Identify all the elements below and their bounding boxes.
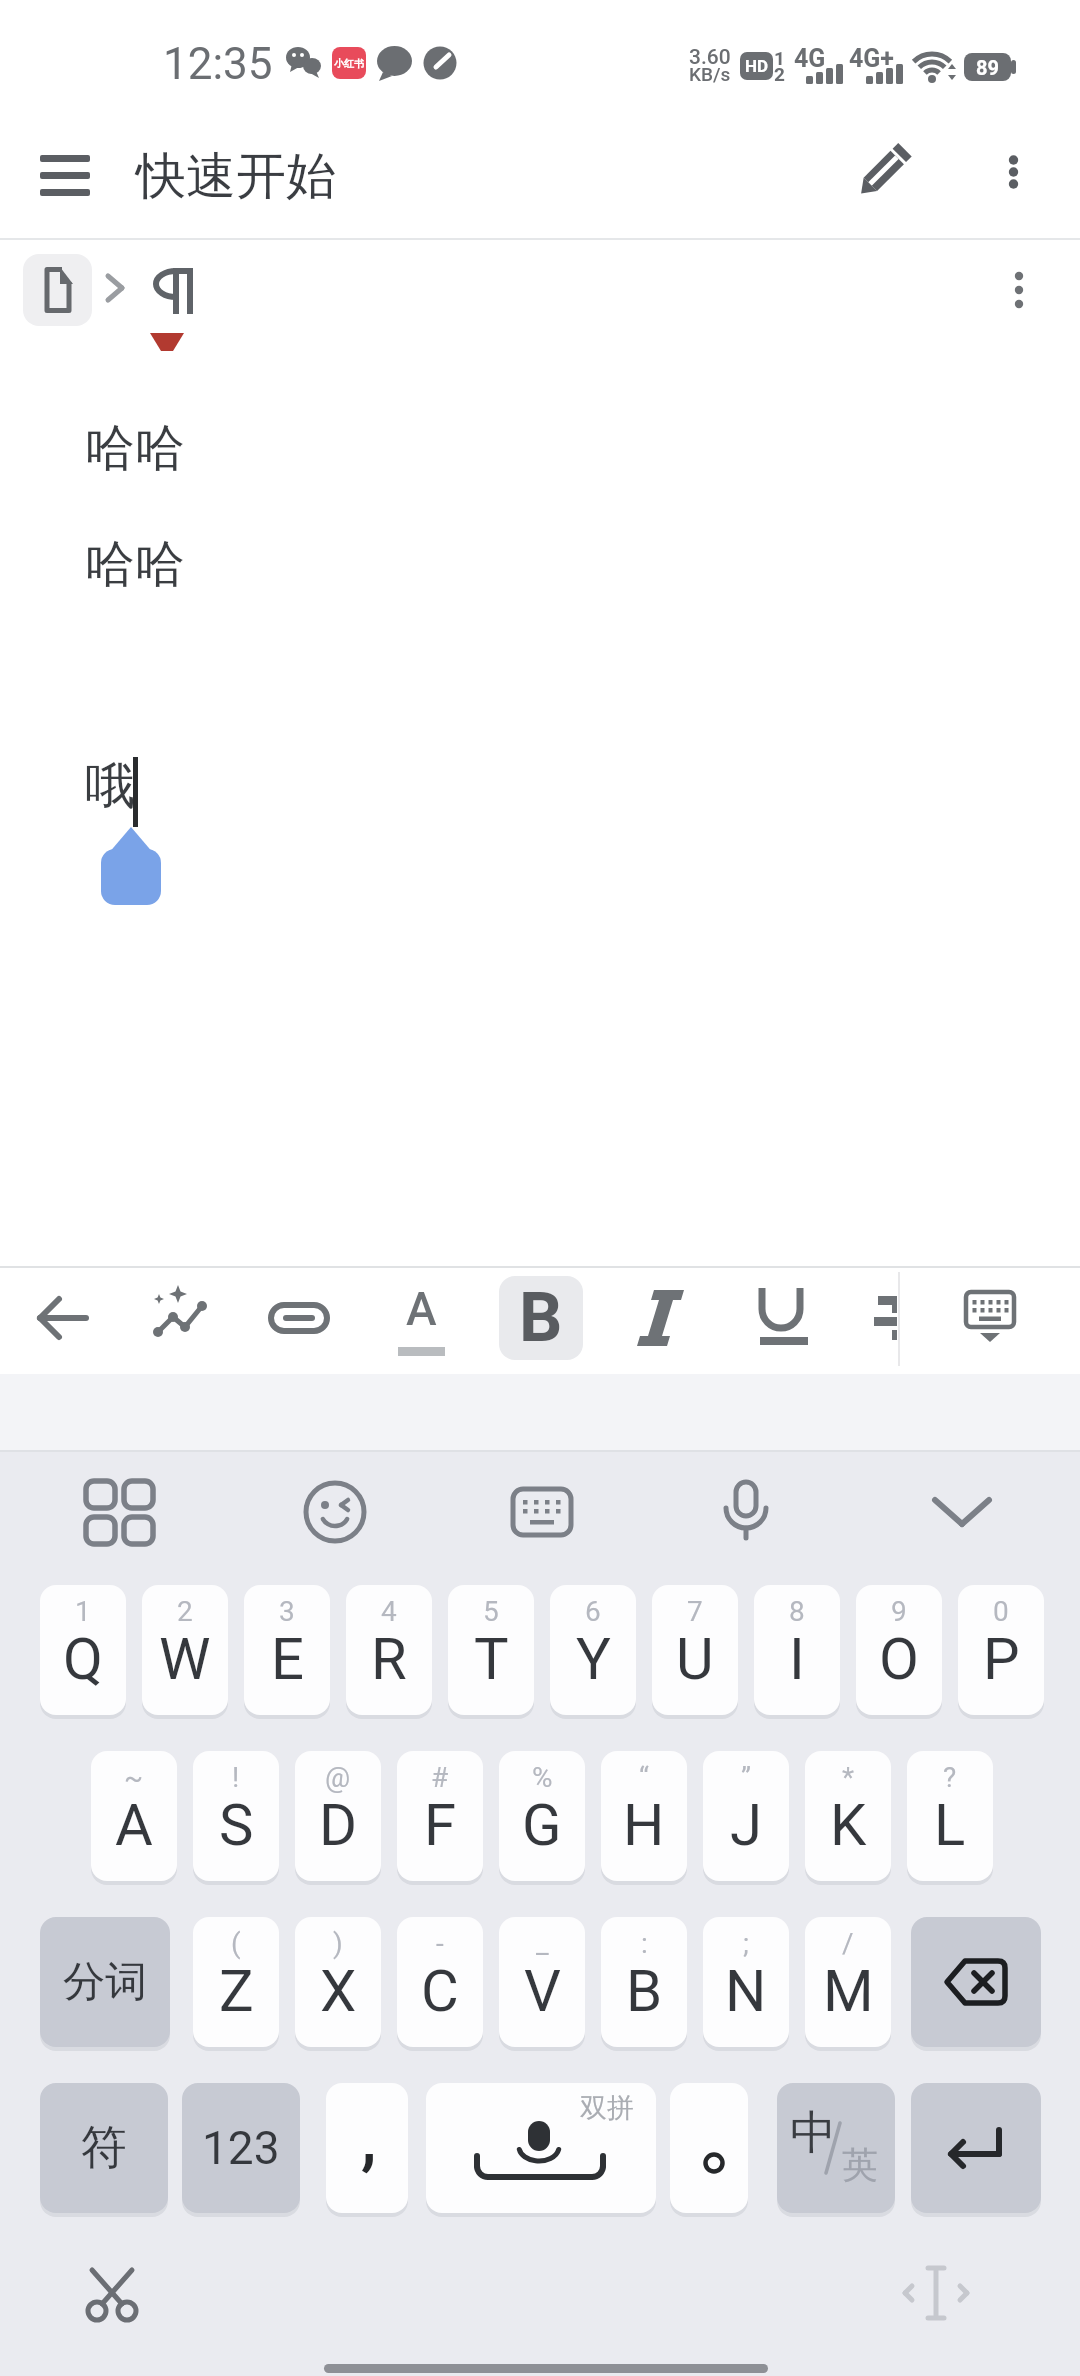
button[interactable]: _ bbox=[499, 1917, 585, 2047]
staticText: 3 bbox=[279, 1595, 295, 1628]
staticText: 3.60 bbox=[689, 45, 731, 70]
staticText: X bbox=[320, 1957, 357, 2025]
staticText: K bbox=[830, 1791, 867, 1859]
staticText: 2 bbox=[177, 1595, 193, 1628]
staticText: D bbox=[319, 1791, 358, 1859]
staticText: * bbox=[842, 1761, 855, 1794]
button[interactable] bbox=[911, 1917, 1041, 2047]
staticText: 0 bbox=[993, 1595, 1009, 1628]
staticText: 123 bbox=[202, 2121, 280, 2175]
button[interactable] bbox=[898, 2258, 974, 2334]
button[interactable] bbox=[75, 1478, 171, 1550]
staticText: L bbox=[934, 1791, 966, 1859]
staticText: 分词 bbox=[63, 1956, 147, 2009]
staticText: C bbox=[421, 1957, 459, 2025]
button[interactable] bbox=[710, 1476, 782, 1548]
button[interactable] bbox=[981, 140, 1045, 204]
button[interactable]: * bbox=[805, 1751, 891, 1881]
staticText: 1 bbox=[774, 47, 785, 69]
button[interactable]: 5 bbox=[448, 1585, 534, 1715]
staticText: V bbox=[524, 1957, 561, 2025]
button[interactable]: ; bbox=[703, 1917, 789, 2047]
button[interactable]: ? bbox=[907, 1751, 993, 1881]
button[interactable] bbox=[506, 1476, 578, 1548]
button[interactable] bbox=[989, 260, 1049, 320]
button[interactable]: ) bbox=[295, 1917, 381, 2047]
staticText: O bbox=[879, 1625, 919, 1693]
staticText: N bbox=[725, 1957, 767, 2025]
staticText: 双拼 bbox=[580, 2091, 634, 2125]
button[interactable]: # bbox=[397, 1751, 483, 1881]
button[interactable]: ” bbox=[703, 1751, 789, 1881]
staticText: % bbox=[532, 1761, 553, 1794]
button[interactable]: 9 bbox=[856, 1585, 942, 1715]
button[interactable]: : bbox=[601, 1917, 687, 2047]
button[interactable] bbox=[146, 258, 206, 322]
button[interactable]: ( bbox=[193, 1917, 279, 2047]
button[interactable]: 7 bbox=[652, 1585, 738, 1715]
button[interactable]: , bbox=[326, 2083, 408, 2213]
button[interactable] bbox=[957, 1280, 1023, 1356]
button[interactable] bbox=[670, 2083, 748, 2213]
button[interactable] bbox=[30, 1285, 96, 1351]
button[interactable] bbox=[628, 1285, 694, 1351]
staticText: # bbox=[431, 1761, 449, 1794]
button[interactable]: 1 bbox=[40, 1585, 126, 1715]
button[interactable] bbox=[748, 1282, 814, 1358]
button[interactable]: 符 bbox=[40, 2083, 168, 2213]
button[interactable]: - bbox=[397, 1917, 483, 2047]
button[interactable]: 8 bbox=[754, 1585, 840, 1715]
staticText: P bbox=[983, 1625, 1020, 1693]
button[interactable] bbox=[299, 1476, 371, 1548]
button[interactable]: / bbox=[805, 1917, 891, 2047]
button[interactable]: 0 bbox=[958, 1585, 1044, 1715]
staticText: KB/s bbox=[689, 63, 731, 85]
staticText: T bbox=[474, 1625, 509, 1693]
staticText: B bbox=[519, 1278, 563, 1358]
staticText: 5 bbox=[483, 1595, 499, 1628]
button[interactable]: ~ bbox=[91, 1751, 177, 1881]
staticText: U bbox=[676, 1625, 714, 1693]
button[interactable]: 分词 bbox=[40, 1917, 170, 2047]
staticText: M bbox=[823, 1957, 874, 2025]
button[interactable]: A bbox=[388, 1282, 454, 1358]
staticText: B bbox=[626, 1957, 663, 2025]
button[interactable]: ! bbox=[193, 1751, 279, 1881]
staticText: 4G+ bbox=[849, 44, 895, 73]
staticText: 2 bbox=[774, 63, 785, 85]
button[interactable] bbox=[147, 1285, 213, 1351]
button[interactable]: % bbox=[499, 1751, 585, 1881]
staticText: Y bbox=[576, 1625, 611, 1693]
button[interactable]: “ bbox=[601, 1751, 687, 1881]
staticText: 1 bbox=[75, 1595, 91, 1628]
button[interactable]: 2 bbox=[142, 1585, 228, 1715]
button[interactable]: @ bbox=[295, 1751, 381, 1881]
button[interactable] bbox=[846, 136, 918, 208]
staticText: 快速开始 bbox=[136, 145, 336, 208]
staticText: “ bbox=[639, 1761, 649, 1794]
staticText: S bbox=[219, 1791, 254, 1859]
button[interactable]: 4 bbox=[346, 1585, 432, 1715]
staticText: / bbox=[842, 1927, 854, 1960]
button[interactable] bbox=[266, 1285, 332, 1351]
button[interactable]: B bbox=[499, 1276, 583, 1360]
staticText: 4 bbox=[381, 1595, 397, 1628]
button[interactable]: 123 bbox=[182, 2083, 300, 2213]
button[interactable]: 中 bbox=[777, 2083, 895, 2213]
button[interactable] bbox=[23, 254, 92, 326]
staticText: E bbox=[271, 1625, 304, 1693]
staticText: @ bbox=[325, 1761, 351, 1794]
staticText: ” bbox=[741, 1761, 752, 1794]
staticText: Z bbox=[219, 1957, 254, 2025]
staticText: ) bbox=[333, 1927, 343, 1960]
button[interactable] bbox=[911, 2083, 1041, 2213]
button[interactable] bbox=[926, 1480, 998, 1544]
button[interactable]: 双拼 bbox=[426, 2083, 656, 2213]
staticText: W bbox=[159, 1625, 211, 1693]
button[interactable] bbox=[28, 144, 102, 208]
staticText: ~ bbox=[124, 1761, 144, 1794]
button[interactable]: 3 bbox=[244, 1585, 330, 1715]
staticText: HD bbox=[745, 56, 769, 76]
button[interactable]: 6 bbox=[550, 1585, 636, 1715]
button[interactable] bbox=[76, 2256, 152, 2332]
